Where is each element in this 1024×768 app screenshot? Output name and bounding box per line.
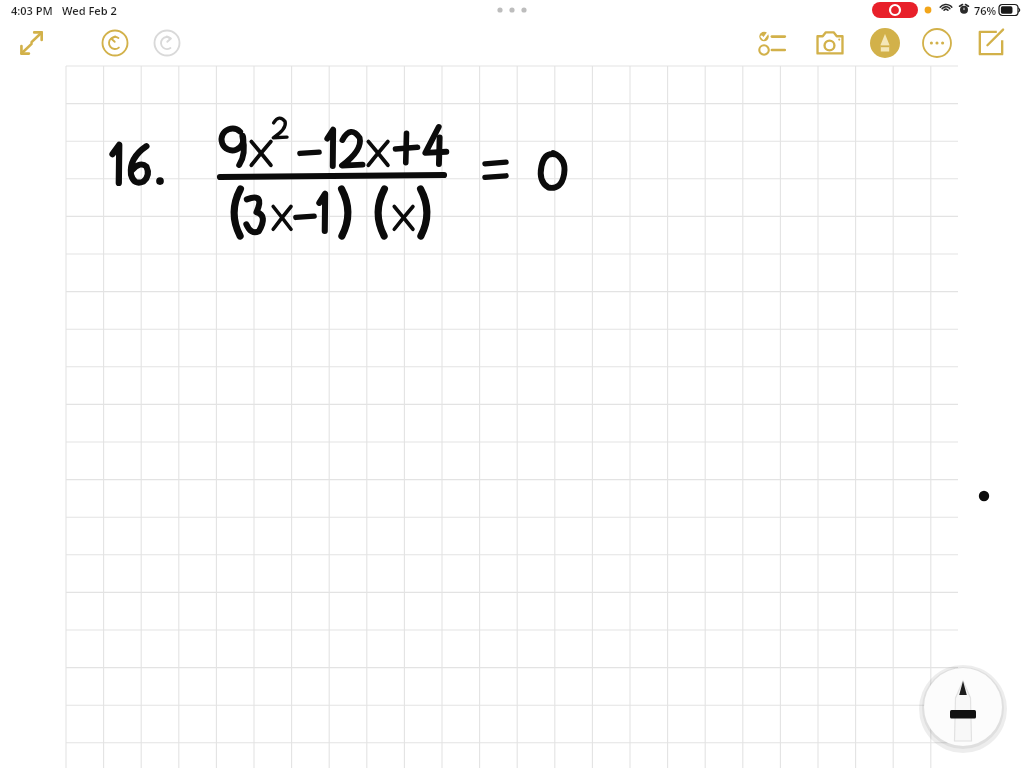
button[interactable]: Pen tool	[867, 25, 903, 61]
button[interactable]: More options	[919, 25, 955, 61]
button[interactable]: New note	[973, 25, 1009, 61]
button[interactable]: Undo	[97, 25, 133, 61]
button[interactable]: Checklist	[755, 25, 791, 61]
button[interactable]: Redo	[149, 25, 185, 61]
button[interactable]: Collapse	[14, 25, 50, 61]
button[interactable]: Camera	[812, 25, 848, 61]
button[interactable]: Drawing tools	[924, 668, 1002, 746]
